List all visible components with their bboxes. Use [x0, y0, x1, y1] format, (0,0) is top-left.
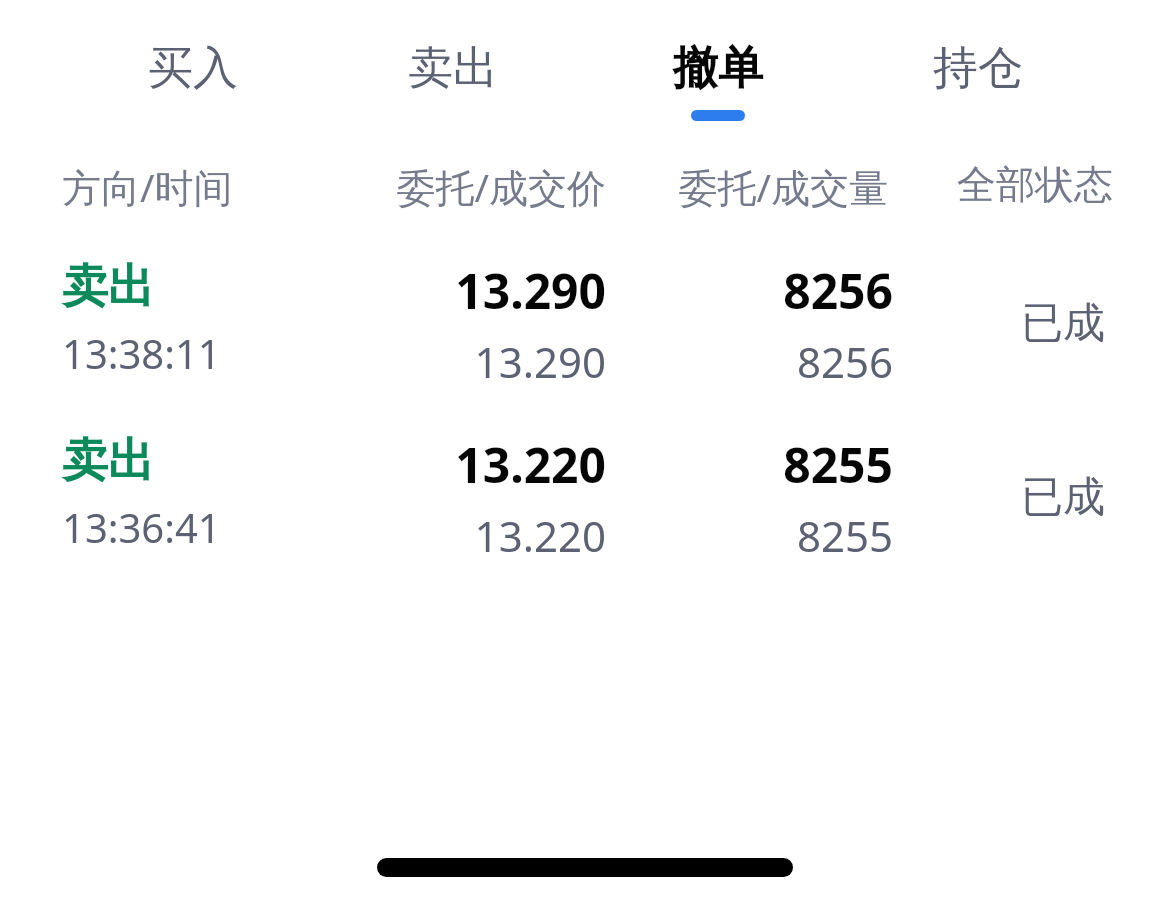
staticText: 方向/时间: [62, 160, 233, 213]
staticText: 13:36:41: [62, 500, 221, 554]
staticText: 8255: [796, 507, 893, 562]
button[interactable]: 卖出: [0, 432, 1170, 562]
button[interactable]: 卖出: [343, 14, 563, 134]
staticText: 委托/成交量: [678, 160, 888, 213]
staticText: 卖出: [62, 432, 154, 490]
staticText: 13:38:11: [62, 326, 221, 380]
button[interactable]: 卖出: [0, 258, 1170, 388]
staticText: 全部状态: [957, 160, 1113, 209]
staticText: 买入: [148, 40, 238, 97]
staticText: 13.220: [455, 432, 606, 497]
staticText: 持仓: [933, 40, 1023, 97]
staticText: 13.290: [455, 258, 606, 323]
staticText: 已成: [1021, 297, 1105, 350]
staticText: 已成: [1021, 471, 1105, 524]
staticText: 8256: [783, 258, 893, 323]
staticText: 卖出: [408, 40, 498, 97]
staticText: 卖出: [62, 258, 154, 316]
staticText: 8256: [796, 333, 893, 388]
staticText: 8255: [783, 432, 893, 497]
button[interactable]: 持仓: [868, 14, 1088, 134]
staticText: 撤单: [673, 40, 763, 97]
staticText: 13.290: [474, 333, 606, 388]
button[interactable]: 撤单: [608, 14, 828, 134]
staticText: 委托/成交价: [396, 160, 606, 213]
button[interactable]: 买入: [83, 14, 303, 134]
staticText: 13.220: [474, 507, 606, 562]
